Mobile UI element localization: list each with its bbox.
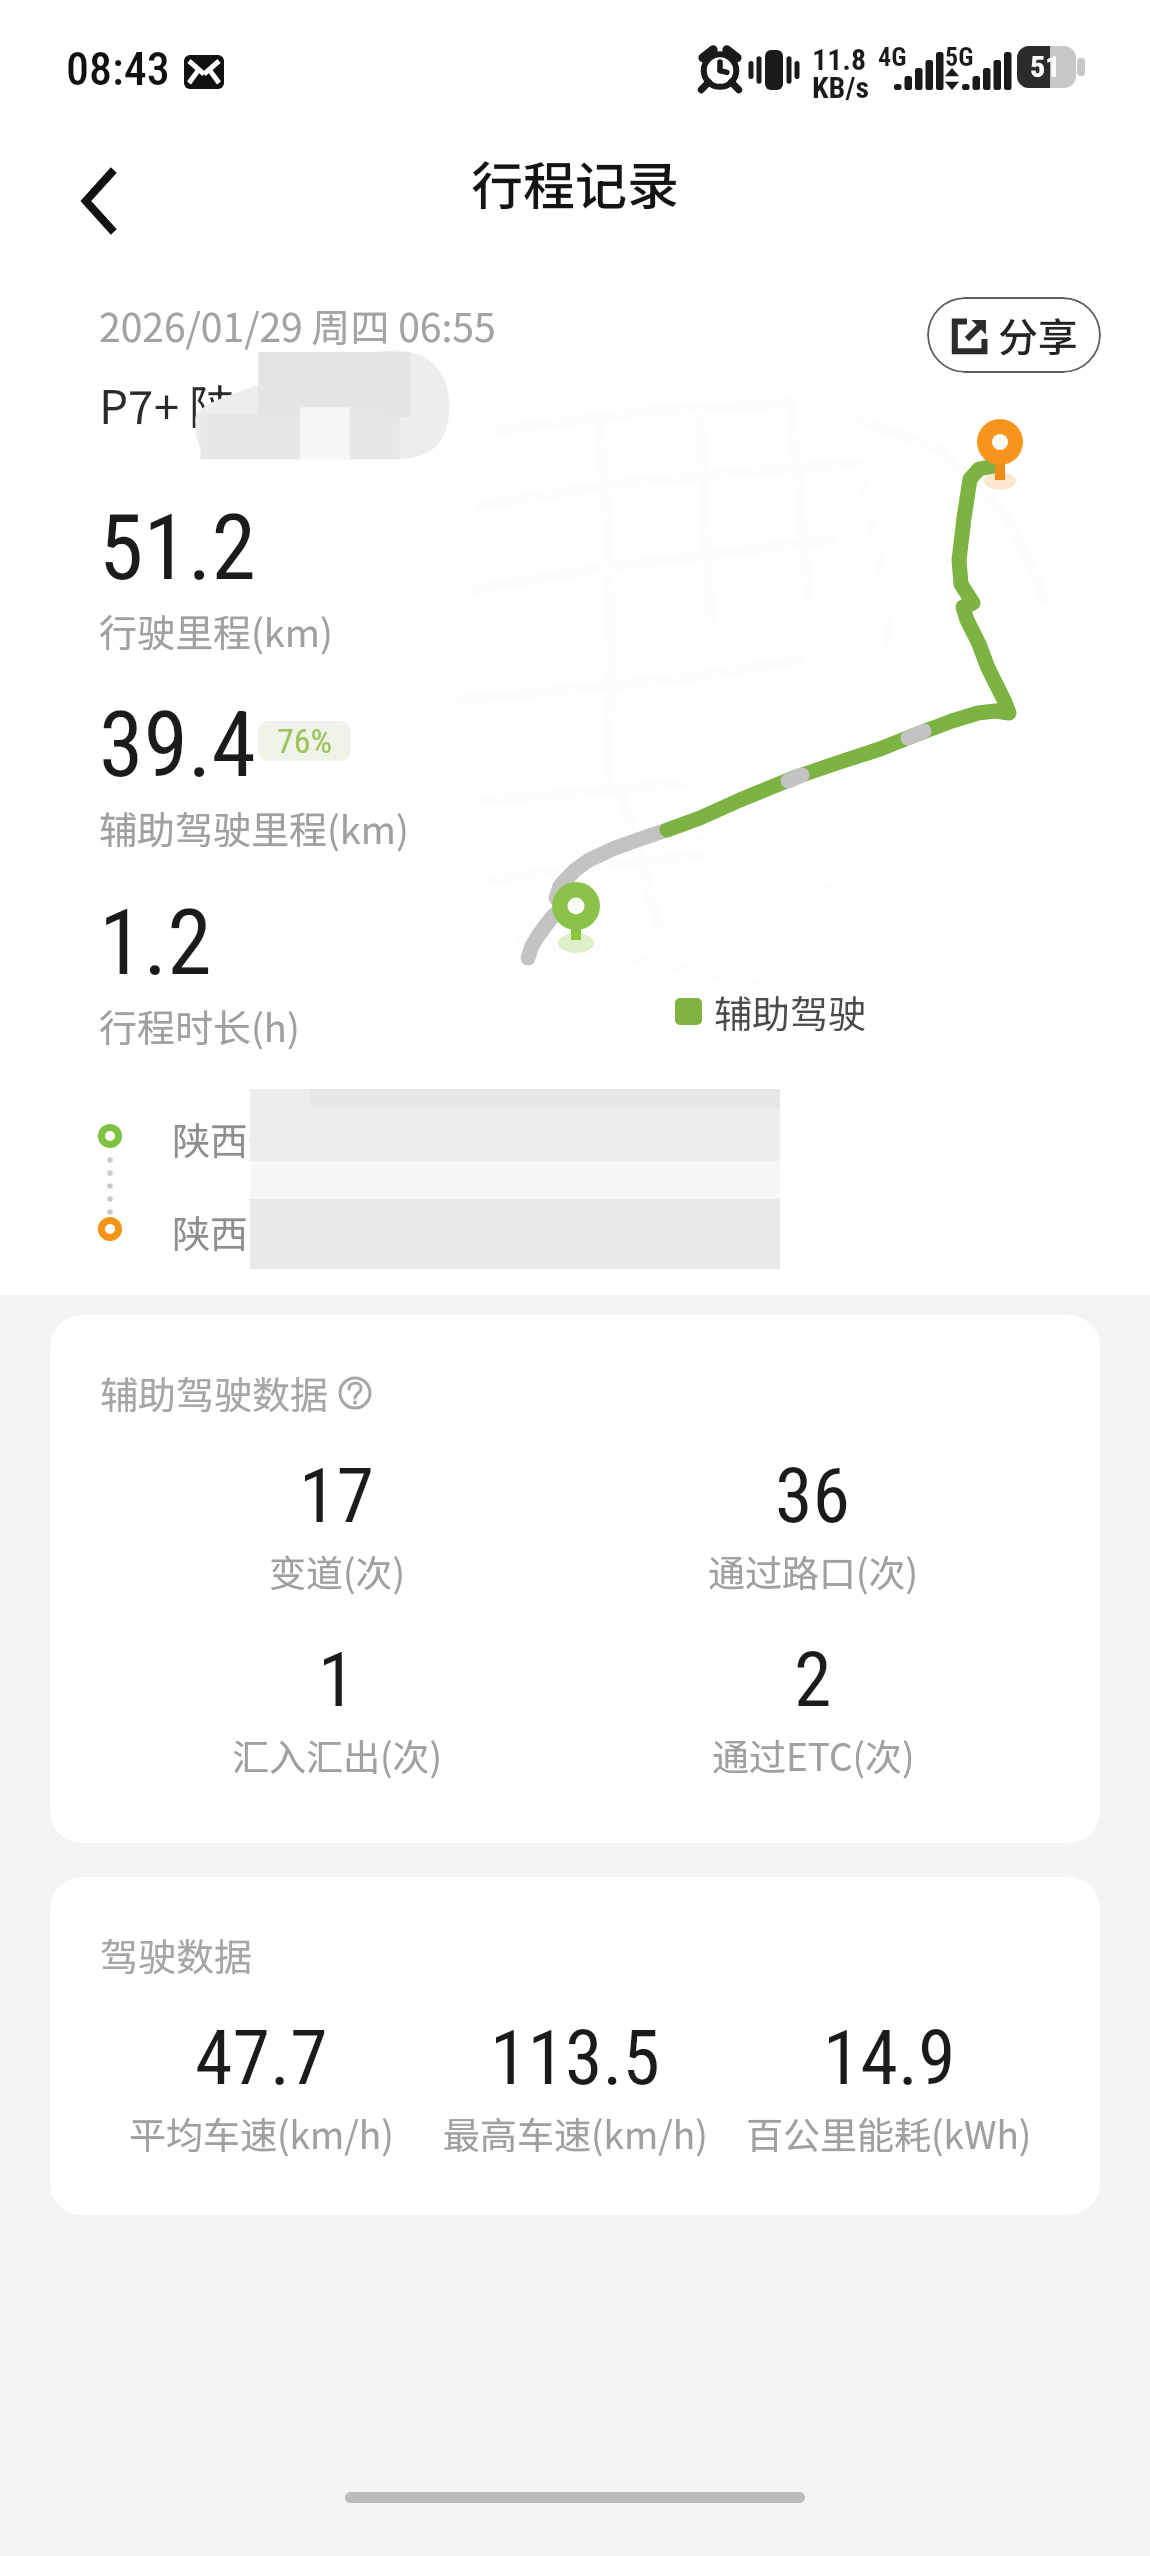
staticText: 行驶里程(km) xyxy=(99,603,333,658)
staticText: 陕西省 xyxy=(172,1111,287,1166)
staticText: 通过ETC(次) xyxy=(712,1728,915,1782)
staticText: 14.9 xyxy=(823,2013,956,2102)
staticText: 1 xyxy=(318,1635,356,1724)
staticText: 辅助驾驶 xyxy=(714,984,867,1039)
staticText: 113.5 xyxy=(490,2013,661,2102)
staticText: 36 xyxy=(775,1451,851,1540)
button[interactable]: 辅助驾驶数据 xyxy=(100,1365,372,1420)
staticText: 分享 xyxy=(998,306,1078,364)
staticText: 1.2 xyxy=(99,891,212,996)
staticText: 通过路口(次) xyxy=(708,1544,919,1598)
staticText: 变道(次) xyxy=(269,1544,406,1598)
staticText: 平均车速(km/h) xyxy=(129,2106,394,2160)
staticText: 5G xyxy=(945,42,974,72)
staticText: 2026/01/29 周四 06:55 xyxy=(99,297,496,353)
staticText: 51 xyxy=(1030,49,1061,84)
staticText: 百公里能耗(kWh) xyxy=(746,2106,1032,2160)
staticText: 2 xyxy=(794,1635,832,1724)
staticText: 47.7 xyxy=(195,2013,328,2102)
staticText: 4G xyxy=(878,42,907,72)
staticText: 驾驶数据 xyxy=(100,1927,253,1982)
staticText: 51.2 xyxy=(99,496,257,601)
staticText: 行程时长(h) xyxy=(99,998,300,1053)
staticText: 76% xyxy=(277,721,333,761)
staticText: 辅助驾驶里程(km) xyxy=(99,800,409,855)
staticText: 39.4 xyxy=(99,693,257,798)
staticText: 汇入汇出(次) xyxy=(232,1728,443,1782)
staticText: 辅助驾驶数据 xyxy=(100,1365,329,1420)
staticText: KB/s xyxy=(812,70,870,105)
staticText: 11.8 xyxy=(812,42,867,77)
staticText: 17 xyxy=(299,1451,375,1540)
staticText: P7+ 陕A xyxy=(99,371,264,438)
button[interactable]: Trip route map xyxy=(470,390,1140,970)
staticText: 最高车速(km/h) xyxy=(443,2106,708,2160)
staticText: 08:43 xyxy=(66,42,170,96)
button[interactable]: Back xyxy=(46,146,156,256)
button[interactable]: 分享 xyxy=(927,297,1101,373)
staticText: 陕西 xyxy=(172,1204,249,1259)
other: Help xyxy=(338,1376,372,1410)
staticText: 行程记录 xyxy=(471,145,680,220)
